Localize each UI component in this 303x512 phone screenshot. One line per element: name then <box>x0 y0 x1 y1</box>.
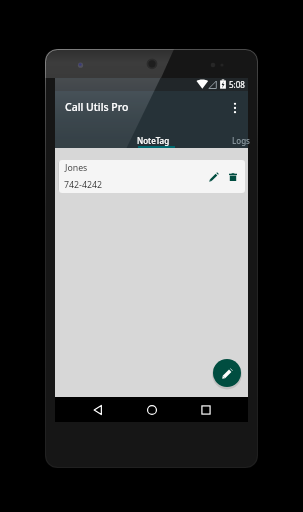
button[interactable]: More options <box>222 91 248 124</box>
staticText: Jones <box>65 162 88 174</box>
button[interactable]: Logs <box>197 124 258 148</box>
button[interactable]: Jones <box>59 160 245 193</box>
button[interactable]: Back <box>81 397 115 422</box>
button[interactable]: Home <box>135 397 169 422</box>
staticText: NoteTag <box>137 135 170 146</box>
button[interactable]: Delete <box>224 160 242 193</box>
staticText: 5:08 <box>229 79 245 90</box>
staticText: Logs <box>232 135 251 146</box>
staticText: Call Utils Pro <box>65 100 129 114</box>
button[interactable]: Add note <box>213 359 241 387</box>
button[interactable]: Recent apps <box>189 397 223 422</box>
button[interactable]: NoteTag <box>109 124 197 148</box>
staticText: 742-4242 <box>64 179 103 191</box>
button[interactable]: Edit <box>205 160 223 193</box>
